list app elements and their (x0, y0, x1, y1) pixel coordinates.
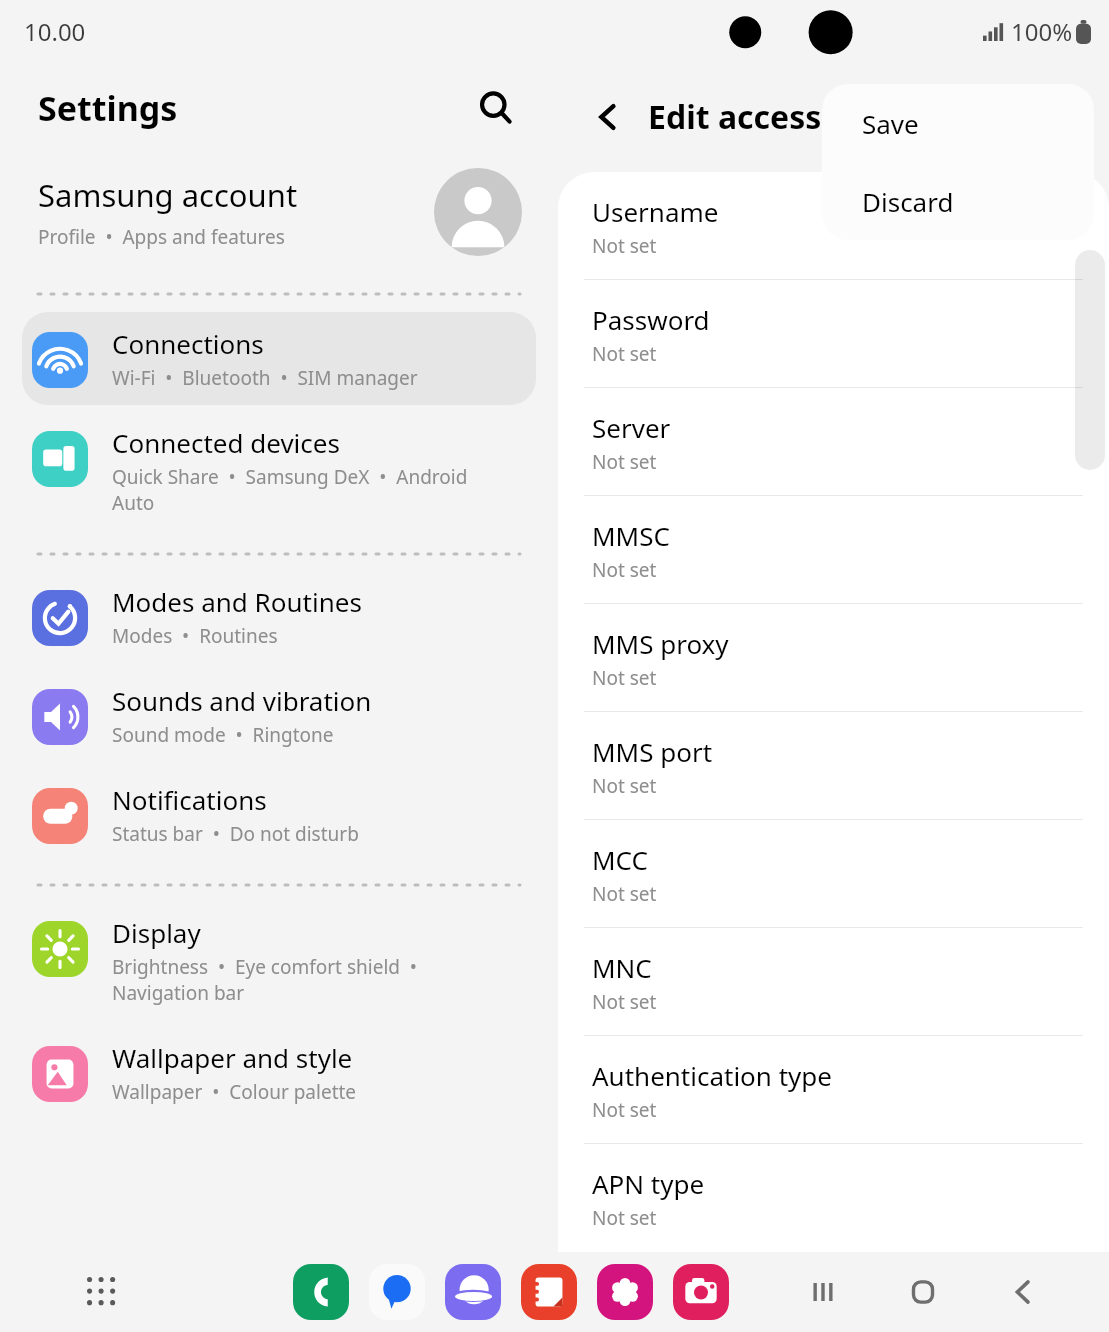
button[interactable]: Modes and Routines (22, 570, 536, 663)
staticText: Modes • Routines (112, 623, 278, 649)
button[interactable]: Discard (822, 162, 1094, 240)
staticText: Sounds and vibration (112, 683, 372, 718)
button[interactable]: MNC (558, 928, 1109, 1036)
staticText: Samsung account (38, 174, 298, 216)
staticText: Not set (592, 1205, 657, 1231)
button[interactable]: App (369, 1264, 425, 1320)
staticText: Not set (592, 773, 657, 799)
button[interactable]: Notifications (22, 768, 536, 861)
staticText: Settings (38, 85, 178, 131)
button[interactable]: Username (558, 172, 1109, 280)
button[interactable]: MMS proxy (558, 604, 1109, 712)
button[interactable]: Authentication type (558, 1036, 1109, 1144)
button[interactable]: Connected devices (22, 411, 536, 530)
button[interactable]: Home (897, 1266, 949, 1318)
staticText: APN type (592, 1166, 705, 1201)
button[interactable]: Back (582, 91, 634, 143)
staticText: Username (592, 194, 719, 229)
staticText: Connected devices (112, 425, 340, 460)
button[interactable]: Samsung account (0, 154, 558, 274)
staticText: Status bar • Do not disturb (112, 821, 359, 847)
staticText: Modes and Routines (112, 584, 362, 619)
button[interactable]: MCC (558, 820, 1109, 928)
button[interactable]: Save (822, 84, 1094, 162)
staticText: Not set (592, 1097, 657, 1123)
staticText: Wallpaper and style (112, 1040, 353, 1075)
staticText: Not set (592, 233, 657, 259)
button[interactable]: Display (22, 901, 536, 1020)
staticText: MMS port (592, 734, 713, 769)
staticText: Sound mode • Ringtone (112, 722, 334, 748)
button[interactable]: APN type (558, 1144, 1109, 1251)
button[interactable]: Search (470, 82, 522, 134)
staticText: Brightness • Eye comfort shield • Naviga… (112, 954, 417, 1006)
staticText: Authentication type (592, 1058, 832, 1093)
staticText: Profile • Apps and features (38, 224, 285, 250)
staticText: Save (862, 106, 919, 141)
button[interactable]: App (293, 1264, 349, 1320)
staticText: MCC (592, 842, 648, 877)
staticText: Not set (592, 341, 657, 367)
staticText: Wallpaper • Colour palette (112, 1079, 357, 1105)
button[interactable]: Wallpaper and style (22, 1026, 536, 1119)
button[interactable]: Password (558, 280, 1109, 388)
staticText: Quick Share • Samsung DeX • Android Auto (112, 464, 468, 516)
staticText: Connections (112, 326, 264, 361)
button[interactable]: Connections (22, 312, 536, 405)
staticText: Password (592, 302, 710, 337)
button[interactable]: All apps (78, 1268, 126, 1316)
staticText: Notifications (112, 782, 267, 817)
staticText: Wi-Fi • Bluetooth • SIM manager (112, 365, 418, 391)
button[interactable]: Server (558, 388, 1109, 496)
button[interactable]: Recents (797, 1266, 849, 1318)
staticText: 100% (1011, 15, 1073, 48)
button[interactable]: Back (997, 1266, 1049, 1318)
staticText: Server (592, 410, 671, 445)
button[interactable]: Sounds and vibration (22, 669, 536, 762)
staticText: MMS proxy (592, 626, 729, 661)
staticText: Not set (592, 665, 657, 691)
staticText: Not set (592, 449, 657, 475)
staticText: 10.00 (24, 15, 86, 48)
staticText: Not set (592, 557, 657, 583)
staticText: MNC (592, 950, 652, 985)
button[interactable]: App (521, 1264, 577, 1320)
button[interactable]: MMSC (558, 496, 1109, 604)
staticText: Not set (592, 881, 657, 907)
staticText: MMSC (592, 518, 670, 553)
button[interactable]: App (445, 1264, 501, 1320)
button[interactable]: MMS port (558, 712, 1109, 820)
staticText: Display (112, 915, 201, 950)
button[interactable]: App (673, 1264, 729, 1320)
staticText: Edit access point (648, 95, 915, 139)
staticText: Discard (862, 184, 954, 219)
staticText: Not set (592, 989, 657, 1015)
button[interactable]: App (597, 1264, 653, 1320)
